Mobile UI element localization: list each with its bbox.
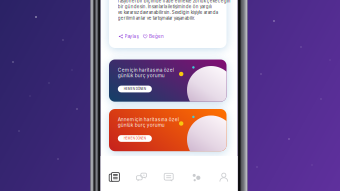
staticText: HEMEN DÖNEN xyxy=(124,87,146,91)
staticText: ve kararsız davranabilirsin. Sevdiğin ki… xyxy=(118,10,218,15)
staticText: günlük burç yorumu xyxy=(118,122,165,128)
button[interactable]: Keşfet xyxy=(183,163,210,191)
button[interactable]: Annem için haritasına özel xyxy=(109,109,226,151)
button[interactable]: Mesajlar xyxy=(155,163,183,191)
button[interactable]: Cem için haritasına özel xyxy=(109,59,226,102)
staticText: Paylaş xyxy=(124,34,138,39)
button[interactable]: Profil xyxy=(210,163,238,191)
button[interactable]: Burçlar xyxy=(101,163,128,191)
staticText: bir gündesin. İnsanlarla iletişiminde ön… xyxy=(118,4,212,9)
button[interactable]: Sohbetler xyxy=(128,163,155,191)
staticText: Cem için haritasına özel xyxy=(118,67,174,73)
staticText: gerilimli anlar ve tartışmalar yaşanabil… xyxy=(118,15,195,21)
button[interactable]: Beğen xyxy=(143,32,164,41)
staticText: Annem için haritasına özel xyxy=(118,117,179,122)
staticText: rasyonel bir biçimde ifade etmekte zorlu… xyxy=(118,0,231,4)
staticText: HEMEN DÖNEN xyxy=(124,137,146,140)
button[interactable]: Paylaş xyxy=(119,32,138,41)
staticText: günlük burç yorumu xyxy=(118,73,165,78)
staticText: Beğen xyxy=(149,34,164,39)
